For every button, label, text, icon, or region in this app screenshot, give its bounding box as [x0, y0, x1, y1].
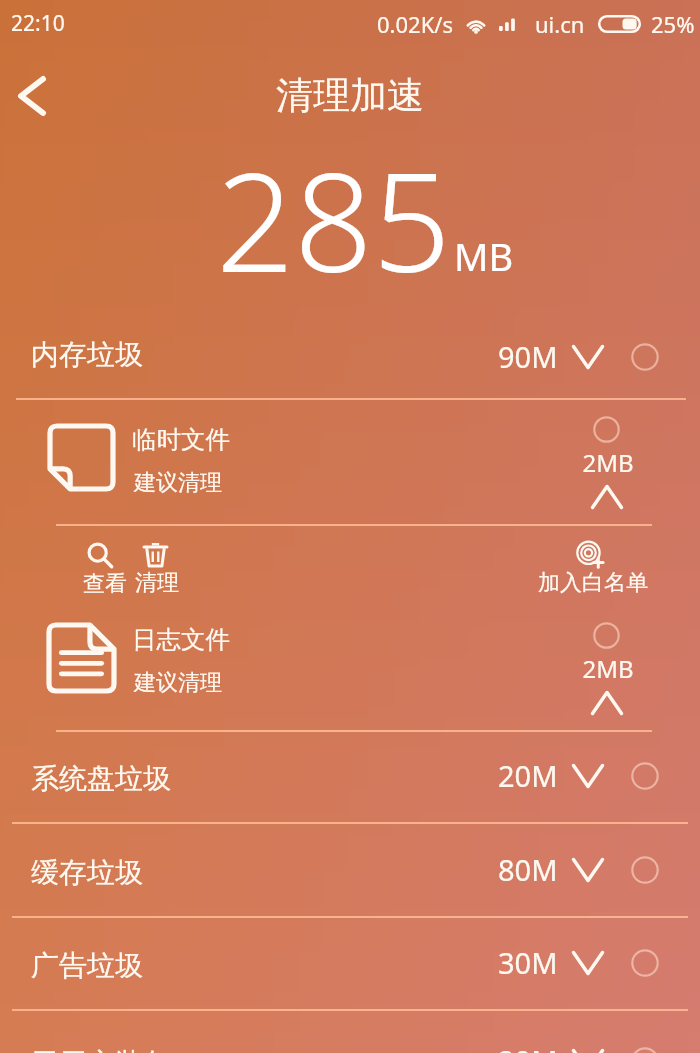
staticText: 30M	[498, 943, 558, 982]
button[interactable]: 内存垃圾	[0, 320, 700, 399]
button[interactable]: 缓存垃圾	[0, 823, 700, 917]
staticText: 清理	[135, 569, 179, 597]
staticText: 日志文件	[132, 624, 230, 655]
button[interactable]: 日志文件	[0, 605, 700, 731]
button[interactable]: Back	[0, 62, 72, 130]
staticText: 临时文件	[132, 424, 230, 455]
button[interactable]: 临时文件	[0, 399, 700, 525]
staticText: ui.cn	[535, 9, 585, 39]
staticText: 清理加速	[0, 72, 700, 119]
staticText: 285	[216, 126, 451, 313]
staticText: 2MB	[561, 446, 655, 479]
staticText: 2MB	[561, 652, 655, 685]
button[interactable]: 广告垃圾	[0, 917, 700, 1010]
staticText: 20M	[498, 756, 558, 795]
staticText: 20M	[498, 1041, 558, 1053]
button[interactable]: 清理	[126, 535, 184, 597]
staticText: 90M	[498, 337, 558, 376]
staticText: 80M	[498, 850, 558, 889]
button[interactable]: 查看	[71, 535, 129, 597]
button[interactable]: 加入白名单	[533, 535, 648, 597]
staticText: 22:10	[11, 9, 65, 38]
staticText: 建议清理	[134, 669, 222, 697]
staticText: 广告垃圾	[31, 948, 143, 983]
staticText: 缓存垃圾	[31, 855, 143, 890]
staticText: 0.02K/s	[377, 9, 453, 39]
staticText: 查看	[83, 570, 127, 598]
staticText: 建议清理	[134, 469, 222, 497]
staticText: 系统盘垃圾	[31, 761, 171, 796]
staticText: 25%	[651, 9, 695, 39]
staticText: 加入白名单	[538, 569, 648, 597]
staticText: 无用安装包	[31, 1046, 171, 1053]
button[interactable]: 系统盘垃圾	[0, 731, 700, 822]
staticText: MB	[454, 230, 514, 282]
button[interactable]: 无用安装包	[0, 1010, 700, 1053]
staticText: 内存垃圾	[31, 337, 143, 372]
